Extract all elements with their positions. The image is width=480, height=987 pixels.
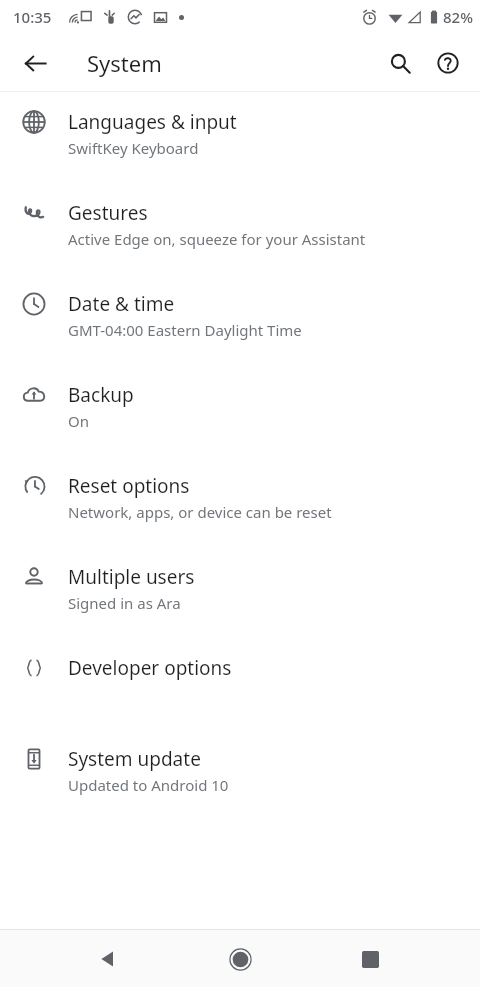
- staticText: GMT-04:00 Eastern Daylight Time: [68, 320, 302, 340]
- staticText: Developer options: [68, 655, 232, 681]
- button[interactable]: Recent apps: [346, 935, 394, 983]
- staticText: 82%: [443, 7, 473, 27]
- button[interactable]: Backup: [0, 365, 480, 456]
- staticText: System update: [68, 746, 201, 772]
- staticText: Network, apps, or device can be reset: [68, 502, 332, 522]
- button[interactable]: Languages & input: [0, 92, 480, 183]
- staticText: Gestures: [68, 200, 148, 226]
- button[interactable]: Multiple users: [0, 547, 480, 638]
- staticText: System: [87, 48, 162, 78]
- button[interactable]: Back: [83, 935, 131, 983]
- staticText: Date & time: [68, 291, 175, 317]
- button[interactable]: Developer options: [0, 638, 480, 729]
- button[interactable]: Back: [11, 39, 59, 87]
- button[interactable]: Reset options: [0, 456, 480, 547]
- staticText: Active Edge on, squeeze for your Assista…: [68, 229, 366, 249]
- button[interactable]: Home: [216, 935, 264, 983]
- button[interactable]: Date & time: [0, 274, 480, 365]
- button[interactable]: Help: [424, 39, 472, 87]
- staticText: Languages & input: [68, 109, 237, 135]
- staticText: SwiftKey Keyboard: [68, 138, 199, 158]
- button[interactable]: Search: [376, 39, 424, 87]
- staticText: Backup: [68, 382, 134, 408]
- staticText: Signed in as Ara: [68, 593, 181, 613]
- staticText: On: [68, 411, 89, 431]
- button[interactable]: Gestures: [0, 183, 480, 274]
- staticText: Updated to Android 10: [68, 775, 229, 795]
- staticText: 10:35: [13, 7, 52, 27]
- staticText: Reset options: [68, 473, 190, 499]
- button[interactable]: System update: [0, 729, 480, 820]
- staticText: Multiple users: [68, 564, 195, 590]
